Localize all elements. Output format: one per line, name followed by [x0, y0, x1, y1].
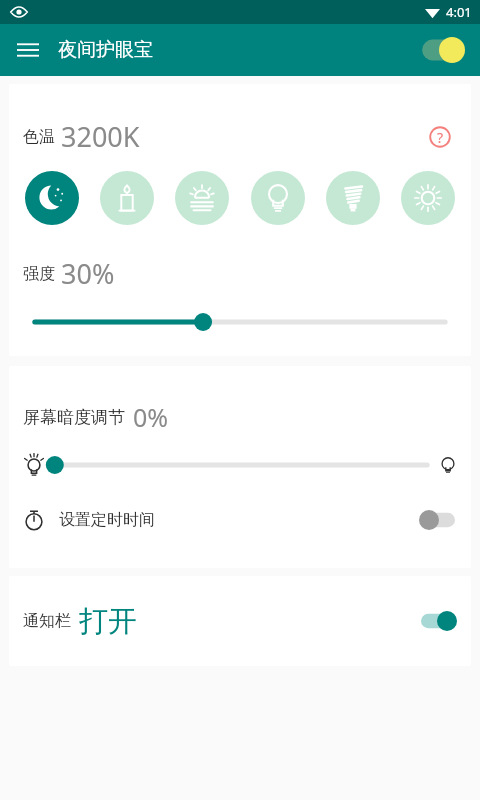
button[interactable]: Menu	[8, 30, 48, 70]
staticText: 屏幕暗度调节	[23, 407, 125, 428]
button[interactable]: 通知栏	[23, 576, 457, 666]
button[interactable]	[33, 308, 447, 336]
staticText: 打开	[79, 603, 137, 640]
button[interactable]: Color temperature preset	[251, 171, 305, 225]
button[interactable]: Color temperature preset	[100, 171, 154, 225]
button[interactable]: Color temperature preset	[175, 171, 229, 225]
staticText: 4:01	[446, 3, 472, 21]
button[interactable]: 设置定时时间	[23, 498, 457, 542]
staticText: 强度	[23, 264, 55, 284]
button[interactable]: Help	[423, 120, 457, 154]
button[interactable]	[53, 452, 429, 478]
staticText: 0%	[133, 400, 169, 434]
button[interactable]: Color temperature preset	[25, 171, 79, 225]
staticText: 夜间护眼宝	[58, 38, 153, 62]
staticText: ?	[437, 128, 444, 147]
staticText: 设置定时时间	[59, 510, 155, 530]
button[interactable]: Color temperature preset	[401, 171, 455, 225]
staticText: 通知栏	[23, 611, 71, 631]
button[interactable]: Color temperature preset	[326, 171, 380, 225]
staticText: 3200K	[61, 118, 140, 155]
staticText: 色温	[23, 127, 55, 147]
button[interactable]: Enable night mode	[414, 30, 470, 70]
staticText: 30%	[61, 255, 115, 292]
